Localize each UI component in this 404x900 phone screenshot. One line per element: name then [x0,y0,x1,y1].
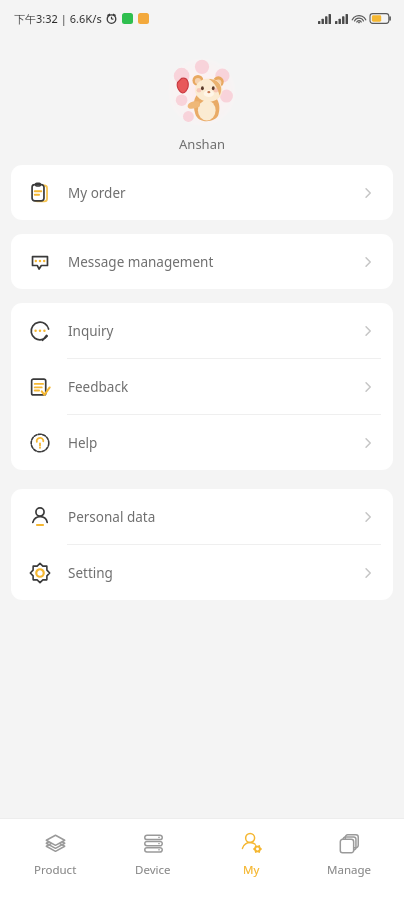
staticText: My order [68,184,126,202]
button[interactable]: Setting [11,545,393,600]
staticText: Help [68,434,98,452]
staticText: Manage [327,862,371,878]
staticText: My [243,862,260,878]
staticText: Setting [68,564,113,582]
button[interactable]: Personal data [11,489,393,544]
button[interactable]: Feedback [11,359,393,414]
button[interactable]: Message management [11,234,393,289]
staticText: 下午3:32 | 6.6K/s [14,11,102,26]
staticText: Inquiry [68,322,114,340]
button[interactable]: Device [110,819,196,878]
button[interactable]: Manage [306,819,392,878]
button[interactable]: My order [11,165,393,220]
staticText: Message management [68,253,214,271]
button[interactable]: Product [12,819,98,878]
button[interactable]: Profile avatar [168,58,236,126]
staticText: Device [135,862,171,878]
staticText: Anshan [179,135,225,153]
staticText: Personal data [68,508,156,526]
button[interactable]: Inquiry [11,303,393,358]
button[interactable]: My [208,819,294,878]
staticText: Product [34,862,77,878]
staticText: Feedback [68,378,129,396]
button[interactable]: Help [11,415,393,470]
